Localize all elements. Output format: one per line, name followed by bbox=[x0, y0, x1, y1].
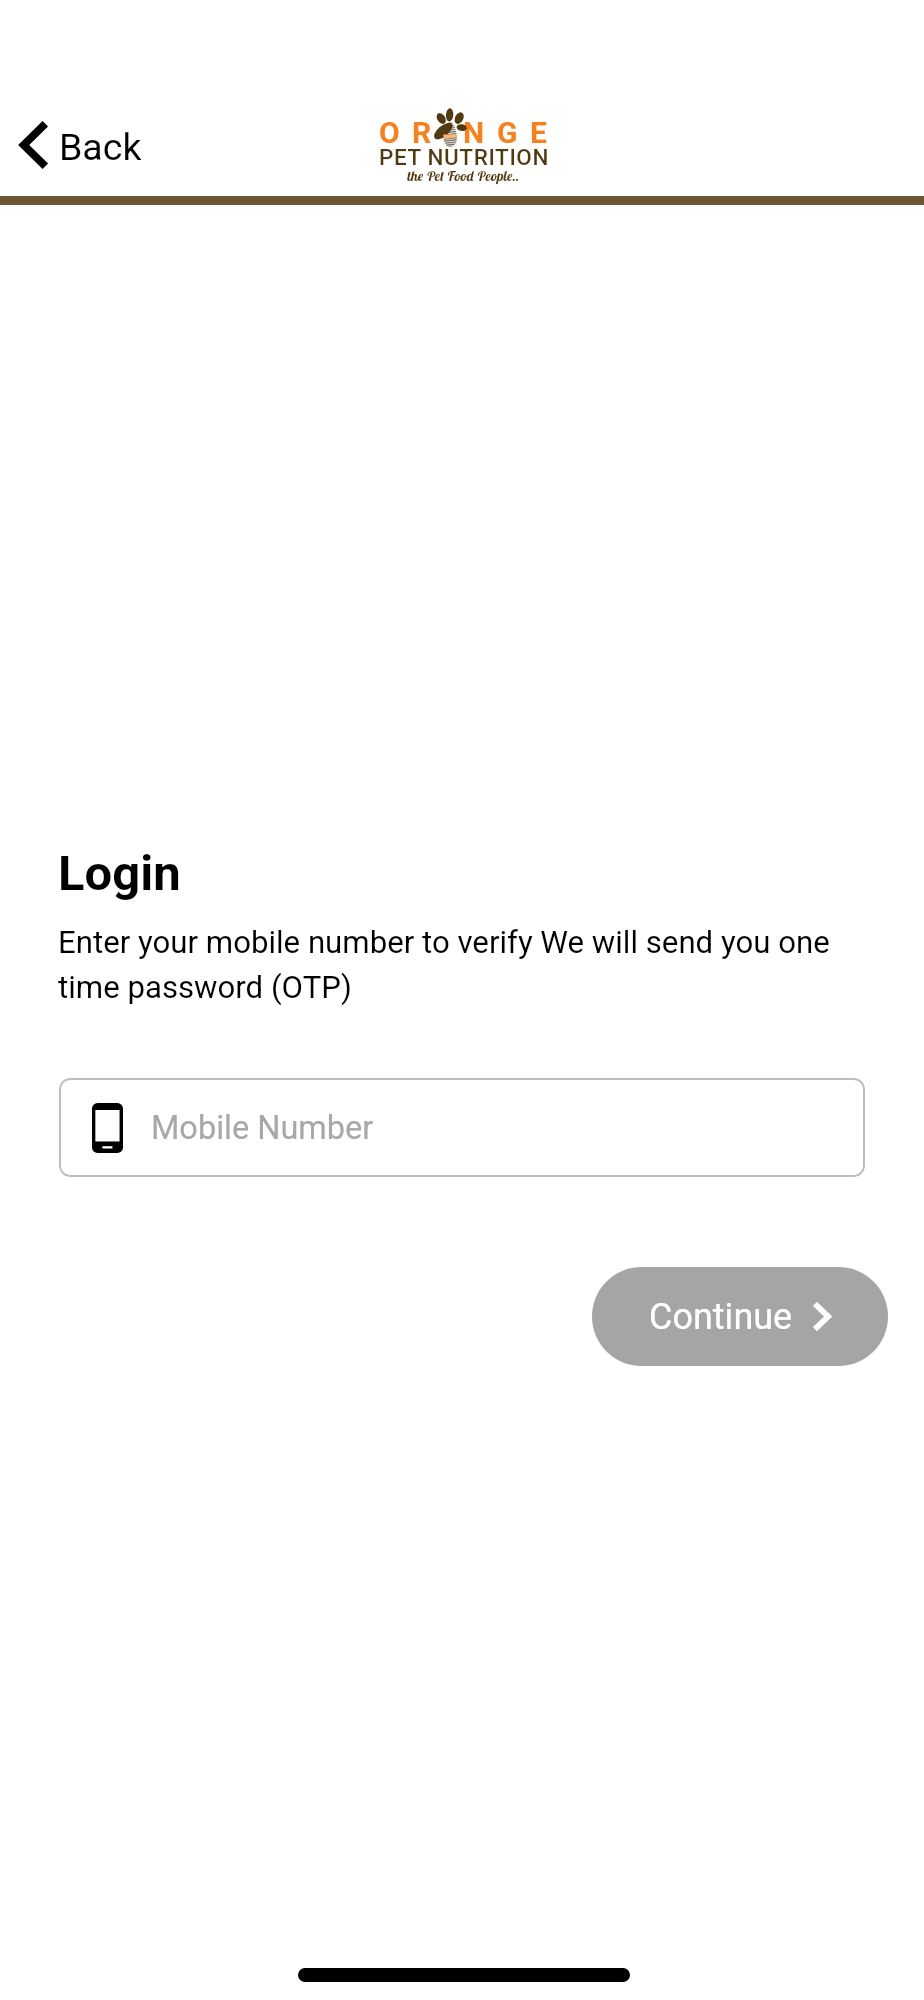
staticText: Login bbox=[58, 845, 181, 902]
staticText: the Pet Food People.. bbox=[407, 167, 520, 185]
staticText: Continue bbox=[649, 1296, 793, 1338]
staticText: E bbox=[530, 115, 547, 150]
staticText: R bbox=[412, 115, 432, 150]
staticText: O bbox=[379, 115, 400, 150]
button[interactable]: Mobile Number bbox=[59, 1078, 865, 1177]
staticText: PET NUTRITION bbox=[379, 144, 547, 170]
staticText: Back bbox=[59, 125, 142, 169]
button[interactable]: Continue bbox=[592, 1267, 888, 1366]
staticText: Mobile Number bbox=[151, 1109, 374, 1147]
staticText: G bbox=[497, 115, 518, 150]
staticText bbox=[444, 115, 452, 150]
staticText: Enter your mobile number to verify We wi… bbox=[58, 924, 868, 1005]
staticText: N bbox=[463, 115, 485, 150]
button[interactable]: Back bbox=[4, 107, 154, 183]
